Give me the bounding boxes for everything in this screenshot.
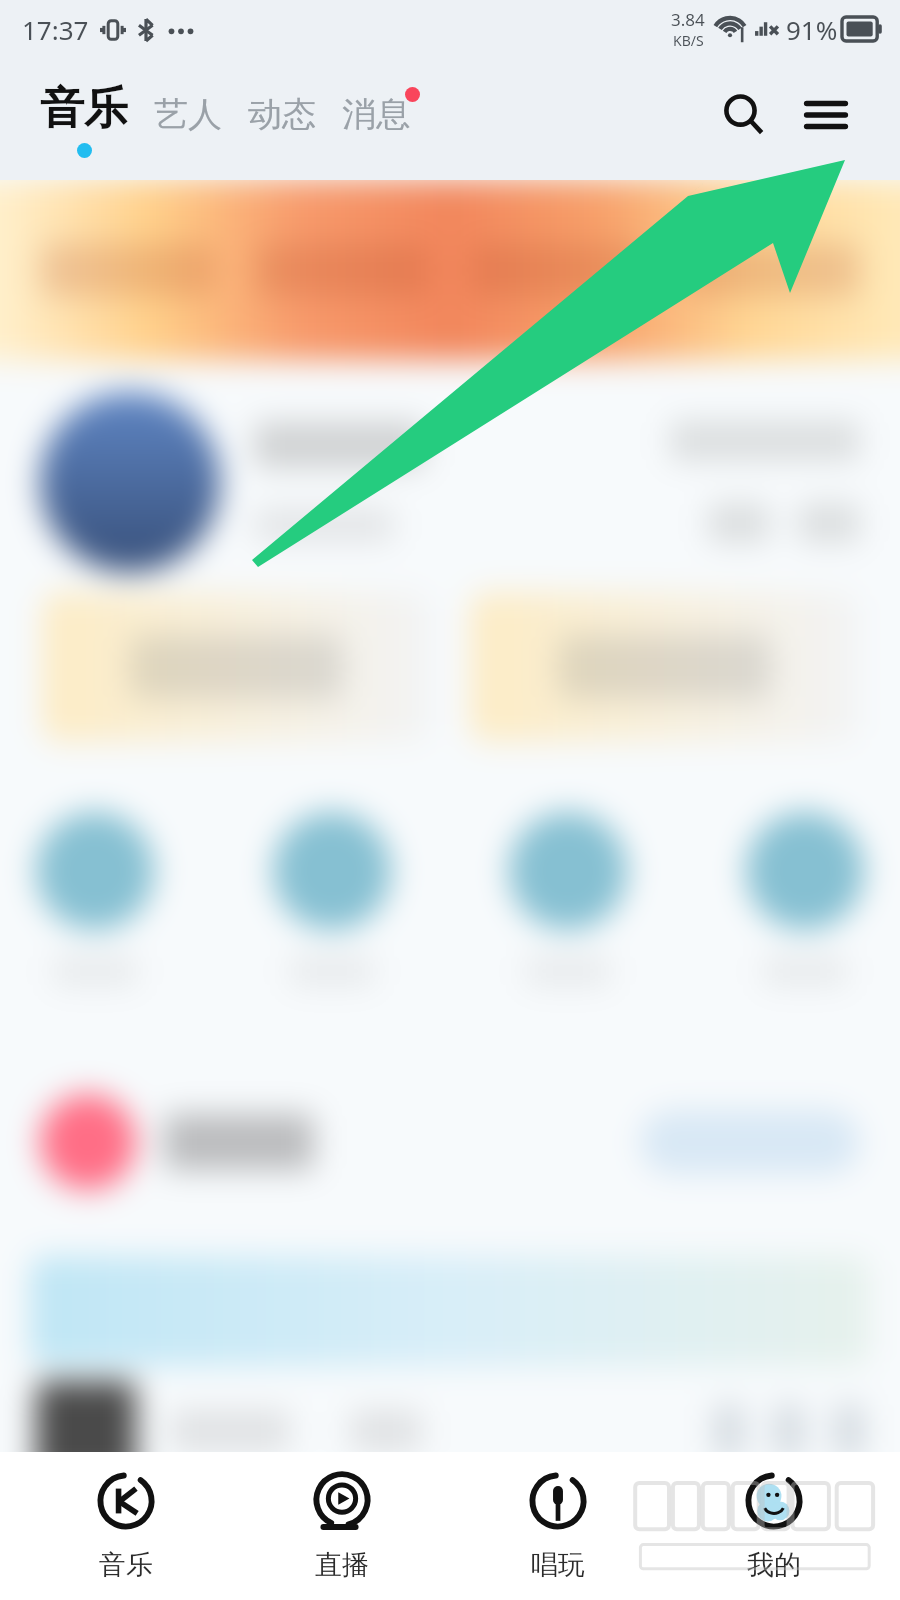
staticText: 唱玩	[531, 1548, 585, 1582]
button[interactable]: 音乐	[36, 1452, 216, 1600]
staticText: 音乐	[40, 81, 128, 136]
button[interactable]: 艺人	[154, 93, 222, 136]
button[interactable]: 消息	[342, 93, 416, 136]
staticText: KB/S	[673, 31, 704, 50]
button[interactable]: 我的	[684, 1452, 864, 1600]
button[interactable]: Search	[714, 85, 774, 145]
button[interactable]: 直播	[252, 1452, 432, 1600]
staticText: 直播	[315, 1548, 369, 1582]
button[interactable]: 动态	[248, 93, 316, 136]
staticText: 3.84	[671, 8, 705, 31]
staticText: 艺人	[154, 93, 222, 136]
staticText: 消息	[342, 93, 410, 136]
staticText: 音乐	[99, 1548, 153, 1582]
button[interactable]: Menu	[796, 85, 856, 145]
staticText: 91%	[786, 12, 838, 47]
staticText: 动态	[248, 93, 316, 136]
staticText: 我的	[747, 1548, 801, 1582]
staticText: 17:37	[22, 12, 89, 47]
button[interactable]: 音乐	[40, 81, 128, 158]
button[interactable]: 唱玩	[468, 1452, 648, 1600]
